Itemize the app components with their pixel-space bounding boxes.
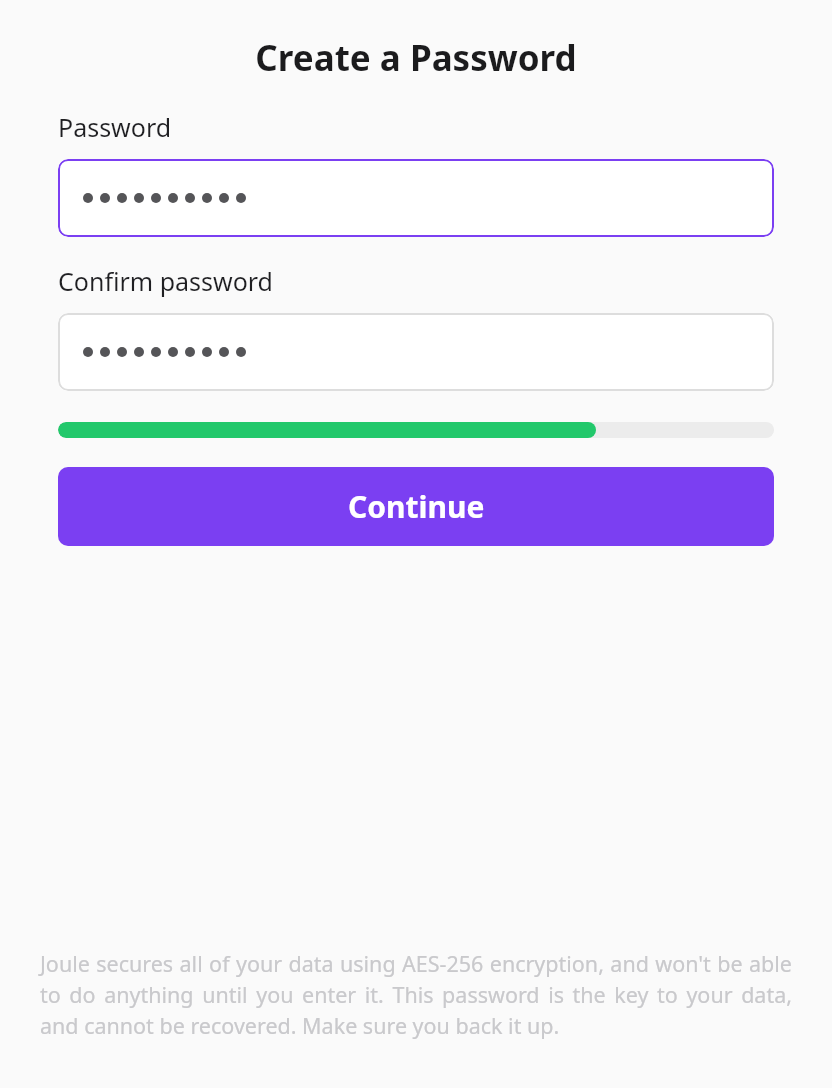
button[interactable]: Continue: [58, 467, 774, 546]
staticText: Password: [58, 110, 172, 144]
button[interactable]: [58, 159, 774, 237]
staticText: Confirm password: [58, 264, 273, 298]
staticText: Joule secures all of your data using AES…: [40, 949, 792, 1041]
staticText: Continue: [348, 486, 485, 527]
button[interactable]: [58, 313, 774, 391]
staticText: Create a Password: [255, 34, 577, 82]
